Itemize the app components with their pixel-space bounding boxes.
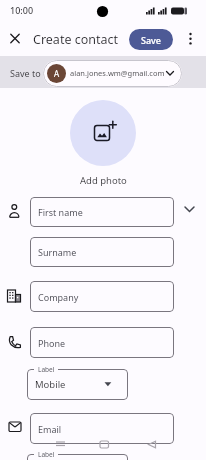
button[interactable]: Surname: [30, 237, 174, 267]
staticText: Company: [38, 291, 79, 303]
staticText: Save to: [10, 67, 41, 79]
button[interactable]: [70, 100, 136, 166]
button[interactable]: Save: [129, 29, 173, 50]
button[interactable]: A: [43, 60, 182, 87]
staticText: Surname: [38, 246, 77, 258]
button[interactable]: First name: [30, 197, 174, 227]
staticText: 10:00: [10, 4, 34, 16]
button[interactable]: Mobile: [27, 369, 128, 400]
staticText: Label: [38, 450, 55, 458]
button[interactable]: [6, 29, 34, 49]
button[interactable]: [183, 29, 199, 49]
staticText: Phone: [38, 337, 66, 349]
staticText: alan.jones.wm@gmail.com: [70, 68, 165, 78]
staticText: Save: [141, 34, 162, 46]
staticText: Mobile: [35, 378, 66, 391]
staticText: Label: [38, 365, 55, 373]
staticText: Create contact: [33, 31, 119, 48]
button[interactable]: Company: [30, 281, 174, 312]
button[interactable]: Email: [30, 413, 174, 444]
staticText: A: [54, 68, 60, 79]
staticText: Email: [38, 423, 62, 435]
staticText: Add photo: [80, 174, 127, 187]
staticText: First name: [38, 206, 83, 218]
button[interactable]: Phone: [30, 327, 174, 358]
